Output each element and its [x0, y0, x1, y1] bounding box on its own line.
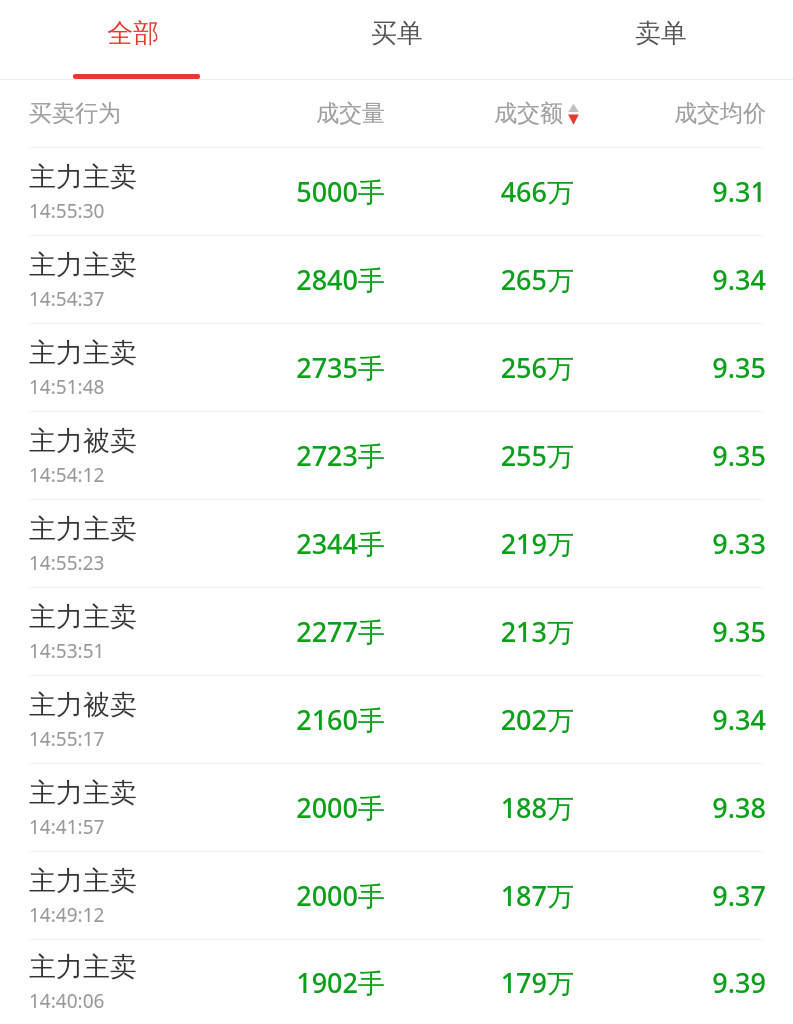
staticText: 188万	[385, 789, 574, 826]
staticText: 9.35	[574, 613, 766, 650]
staticText: 1902手	[229, 964, 385, 1001]
button[interactable]: 主力主卖	[0, 323, 793, 411]
button[interactable]: 主力主卖	[0, 939, 793, 1024]
staticText: 主力主卖	[29, 864, 137, 898]
staticText: 主力主卖	[29, 776, 137, 810]
button[interactable]: 主力主卖	[0, 763, 793, 851]
staticText: 9.31	[574, 173, 766, 210]
staticText: 2735手	[229, 349, 385, 386]
staticText: 主力主卖	[29, 600, 137, 634]
staticText: 9.35	[574, 437, 766, 474]
staticText: 2723手	[229, 437, 385, 474]
button[interactable]: 成交量	[200, 99, 385, 128]
button[interactable]: 成交额	[400, 99, 580, 128]
button[interactable]: 主力主卖	[0, 147, 793, 235]
staticText: 9.38	[574, 789, 766, 826]
staticText: 14:40:06	[29, 988, 105, 1014]
staticText: 2000手	[229, 877, 385, 914]
staticText: 2344手	[229, 525, 385, 562]
staticText: 主力主卖	[29, 160, 137, 194]
staticText: 255万	[385, 437, 574, 474]
button[interactable]: 全部	[0, 0, 265, 79]
staticText: 成交额	[494, 99, 563, 128]
staticText: 179万	[385, 964, 574, 1001]
staticText: 买单	[371, 17, 423, 50]
staticText: 主力被卖	[29, 688, 137, 722]
button[interactable]: 主力主卖	[0, 587, 793, 675]
staticText: 成交量	[200, 99, 385, 128]
staticText: 主力主卖	[29, 512, 137, 546]
staticText: 全部	[107, 17, 159, 50]
staticText: 9.37	[574, 877, 766, 914]
staticText: 14:55:17	[29, 726, 105, 752]
staticText: 9.33	[574, 525, 766, 562]
button[interactable]: 主力主卖	[0, 851, 793, 939]
staticText: 187万	[385, 877, 574, 914]
staticText: 9.34	[574, 261, 766, 298]
staticText: 9.35	[574, 349, 766, 386]
staticText: 主力主卖	[29, 248, 137, 282]
staticText: 14:49:12	[29, 902, 105, 928]
staticText: 256万	[385, 349, 574, 386]
staticText: 14:53:51	[29, 638, 105, 664]
staticText: 14:54:12	[29, 462, 105, 488]
staticText: 14:41:57	[29, 814, 105, 840]
staticText: 213万	[385, 613, 574, 650]
staticText: 2277手	[229, 613, 385, 650]
staticText: 14:55:23	[29, 550, 105, 576]
staticText: 219万	[385, 525, 574, 562]
staticText: 5000手	[229, 173, 385, 210]
staticText: 主力主卖	[29, 950, 137, 984]
button[interactable]: 卖单	[529, 0, 793, 79]
staticText: 265万	[385, 261, 574, 298]
button[interactable]: 主力被卖	[0, 675, 793, 763]
staticText: 成交均价	[674, 99, 766, 128]
button[interactable]: 主力被卖	[0, 411, 793, 499]
button[interactable]: 买单	[265, 0, 529, 79]
button[interactable]: 主力主卖	[0, 499, 793, 587]
staticText: 买卖行为	[29, 99, 121, 128]
staticText: 202万	[385, 701, 574, 738]
staticText: 2160手	[229, 701, 385, 738]
staticText: 9.39	[574, 964, 766, 1001]
staticText: 9.34	[574, 701, 766, 738]
staticText: 466万	[385, 173, 574, 210]
staticText: 2000手	[229, 789, 385, 826]
staticText: 卖单	[635, 17, 687, 50]
staticText: 14:54:37	[29, 286, 105, 312]
staticText: 14:55:30	[29, 198, 105, 224]
staticText: 主力主卖	[29, 336, 137, 370]
staticText: 主力被卖	[29, 424, 137, 458]
staticText: 2840手	[229, 261, 385, 298]
button[interactable]: 主力主卖	[0, 235, 793, 323]
staticText: 14:51:48	[29, 374, 105, 400]
button[interactable]: 成交均价	[674, 99, 766, 128]
